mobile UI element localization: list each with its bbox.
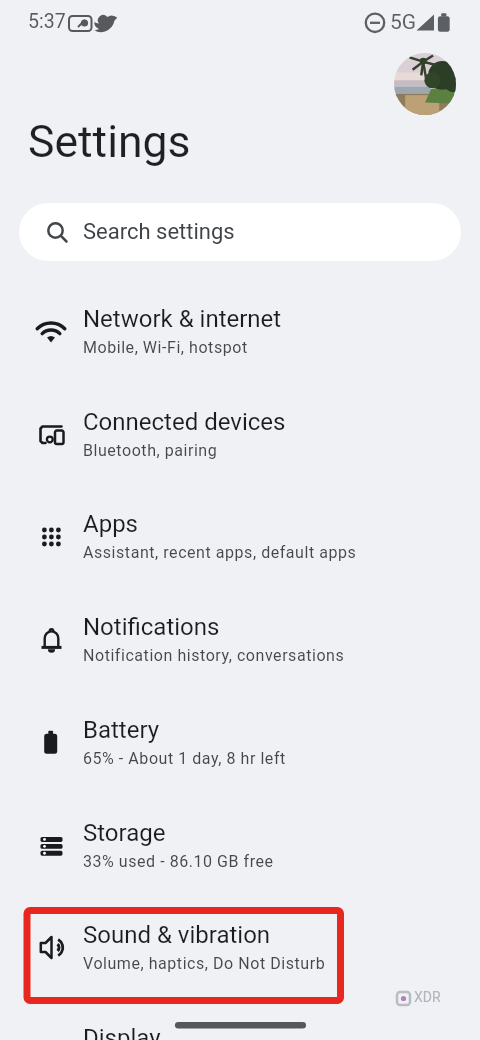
staticText: Settings [28,116,191,168]
staticText: Notification history, conversations [83,646,345,665]
button[interactable]: Network & internet [0,281,480,383]
button[interactable]: Storage [0,795,480,897]
staticText: Sound & vibration [83,921,271,949]
staticText: Assistant, recent apps, default apps [83,543,357,562]
button[interactable] [394,53,456,115]
staticText: Network & internet [83,305,282,333]
staticText: Apps [83,510,138,538]
button[interactable]: Connected devices [0,384,480,486]
staticText: Storage [83,819,166,847]
button[interactable]: Notifications [0,589,480,691]
staticText: 33% used - 86.10 GB free [83,852,274,871]
staticText: Search settings [83,219,235,245]
staticText: 5G [390,10,417,35]
staticText: Display [83,1024,161,1040]
staticText: Connected devices [83,408,286,436]
button[interactable]: Search settings [19,203,461,261]
button[interactable]: Sound & vibration [0,897,480,999]
button[interactable]: Apps [0,486,480,588]
staticText: 65% - About 1 day, 8 hr left [83,749,286,768]
staticText: Notifications [83,613,220,641]
staticText: XDR [414,989,441,1005]
staticText: Battery [83,716,160,744]
staticText: Volume, haptics, Do Not Disturb [83,954,326,973]
staticText: Bluetooth, pairing [83,441,218,460]
button[interactable]: Display [0,1000,480,1040]
button[interactable]: Battery [0,692,480,794]
staticText: Mobile, Wi-Fi, hotspot [83,338,248,357]
staticText: 5:37 [28,10,66,33]
